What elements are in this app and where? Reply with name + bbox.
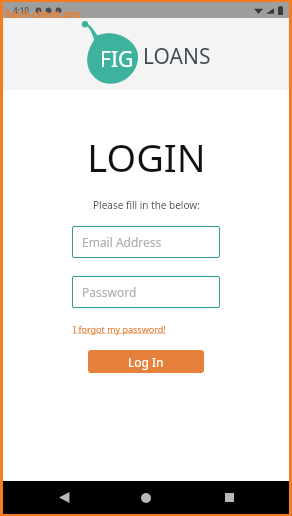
staticText: Log In bbox=[128, 354, 164, 370]
staticText: Password bbox=[82, 284, 137, 300]
staticText: LOGIN bbox=[87, 131, 206, 183]
staticText: 4:10 bbox=[13, 5, 29, 16]
button[interactable]: Log In bbox=[88, 350, 204, 373]
staticText: FIG bbox=[100, 45, 134, 74]
button[interactable]: Home bbox=[124, 481, 168, 514]
staticText: Please fill in the below: bbox=[93, 198, 200, 212]
button[interactable]: Password bbox=[72, 276, 220, 308]
staticText: Email Address bbox=[82, 234, 162, 250]
button[interactable]: I forgot my password! bbox=[73, 322, 166, 336]
staticText: hack-cheat.org bbox=[5, 7, 80, 21]
staticText: LOANS bbox=[143, 42, 211, 71]
button[interactable]: Back bbox=[42, 481, 86, 514]
button[interactable]: Email Address bbox=[72, 226, 220, 258]
button[interactable]: Recent apps bbox=[207, 481, 251, 514]
staticText: I forgot my password! bbox=[73, 323, 166, 335]
